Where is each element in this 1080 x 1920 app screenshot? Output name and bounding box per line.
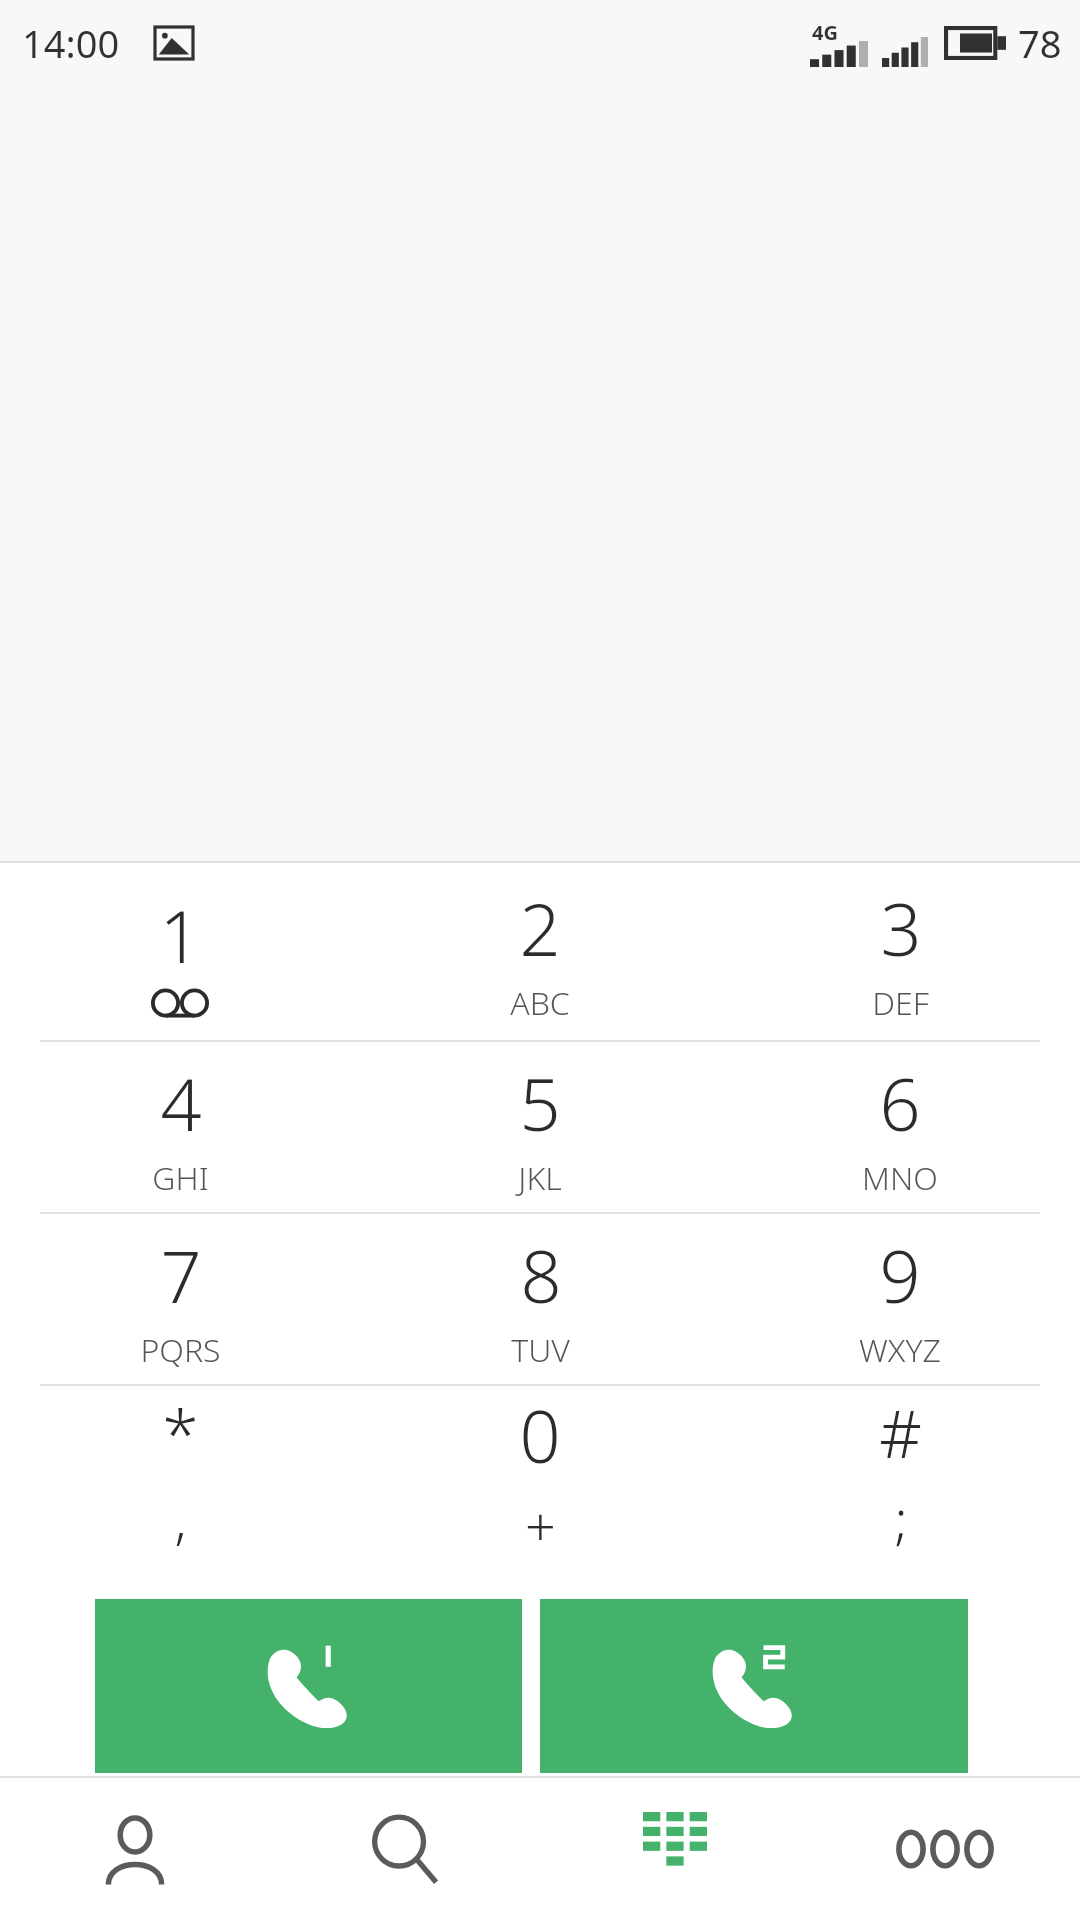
button[interactable]: 6 <box>720 1042 1080 1212</box>
staticText: 4G <box>812 19 838 46</box>
button[interactable]: Dialpad <box>540 1778 810 1920</box>
staticText: # <box>879 1387 922 1477</box>
button[interactable]: 0 <box>360 1386 720 1556</box>
staticText: 1 <box>159 886 201 984</box>
button[interactable]: 2 <box>360 863 720 1040</box>
staticText: JKL <box>518 1156 562 1200</box>
button[interactable]: 4 <box>0 1042 360 1212</box>
staticText: MNO <box>862 1156 938 1200</box>
button[interactable]: 9 <box>720 1214 1080 1384</box>
staticText: DEF <box>872 981 929 1025</box>
staticText: 78 <box>1018 17 1062 69</box>
staticText: * <box>162 1387 199 1477</box>
staticText: 7 <box>160 1226 202 1324</box>
button[interactable]: Search <box>270 1778 540 1920</box>
staticText: , <box>174 1481 187 1555</box>
staticText: TUV <box>511 1328 570 1372</box>
staticText: + <box>525 1488 556 1556</box>
staticText: 2 <box>519 879 561 977</box>
button[interactable]: Call with SIM 1 <box>95 1599 522 1773</box>
button[interactable]: Contacts <box>0 1778 270 1920</box>
button[interactable]: 8 <box>360 1214 720 1384</box>
staticText: GHI <box>152 1156 209 1200</box>
staticText: 0 <box>519 1386 561 1484</box>
button[interactable]: 3 <box>720 863 1080 1040</box>
button[interactable]: 7 <box>0 1214 360 1384</box>
button[interactable]: * <box>0 1386 360 1556</box>
staticText: ABC <box>510 981 570 1025</box>
staticText: 9 <box>879 1226 921 1324</box>
staticText: 5 <box>519 1054 561 1152</box>
staticText: WXYZ <box>859 1328 941 1372</box>
staticText: ; <box>894 1481 908 1555</box>
staticText: 4 <box>160 1054 202 1152</box>
staticText: 14:00 <box>22 17 120 69</box>
button[interactable]: # <box>720 1386 1080 1556</box>
staticText: 6 <box>879 1054 921 1152</box>
button[interactable]: 1 <box>0 863 360 1040</box>
button[interactable]: 5 <box>360 1042 720 1212</box>
staticText: 3 <box>880 879 922 977</box>
staticText: PQRS <box>140 1328 221 1372</box>
staticText: 8 <box>520 1226 562 1324</box>
button[interactable]: More <box>810 1778 1080 1920</box>
button[interactable]: Call with SIM 2 <box>540 1599 968 1773</box>
